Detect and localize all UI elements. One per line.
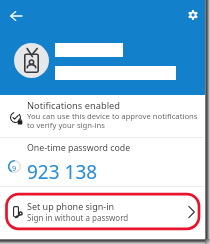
staticText: 923 138 <box>27 159 98 185</box>
staticText: Notifications enabled <box>27 99 120 112</box>
button[interactable]: Set up phone sign-in <box>0 196 205 226</box>
staticText: Sign in without a password <box>27 212 129 223</box>
staticText: One-time password code <box>27 142 131 154</box>
staticText: You can use this device to approve notif… <box>27 111 198 130</box>
button[interactable]: Back <box>4 4 28 28</box>
button[interactable]: Settings <box>181 3 205 27</box>
staticText: 9 <box>12 163 17 173</box>
staticText: Set up phone sign-in <box>27 200 115 212</box>
